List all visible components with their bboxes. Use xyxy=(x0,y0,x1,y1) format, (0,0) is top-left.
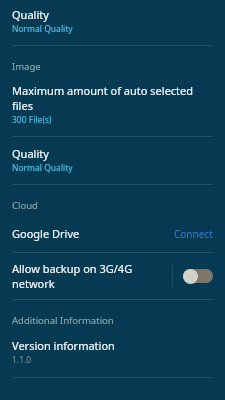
staticText: Google Drive xyxy=(12,226,174,241)
staticText: Normal Quality xyxy=(12,162,73,174)
staticText: Normal Quality xyxy=(12,23,73,35)
button[interactable]: Allow backup on 3G/4G network xyxy=(0,253,225,299)
button[interactable]: Google Drive xyxy=(0,224,225,252)
button[interactable]: Quality xyxy=(0,0,225,45)
staticText: Cloud xyxy=(12,199,225,212)
staticText: Image xyxy=(12,60,225,73)
button[interactable]: Maximum amount of auto selected files xyxy=(0,83,225,136)
staticText: Quality xyxy=(12,146,49,161)
button[interactable]: Version information xyxy=(0,338,225,377)
staticText: Version information xyxy=(12,338,115,353)
staticText: Maximum amount of auto selected files xyxy=(12,83,213,113)
button[interactable]: Allow backup on 3G/4G network toggle xyxy=(183,268,213,284)
staticText: Quality xyxy=(12,7,49,22)
staticText: Connect xyxy=(174,227,213,241)
staticText: Allow backup on 3G/4G network xyxy=(12,261,172,291)
staticText: 1.1.0 xyxy=(12,354,32,366)
staticText: Additional Information xyxy=(12,314,225,327)
staticText: 300 File(s) xyxy=(12,114,52,126)
button[interactable]: Quality xyxy=(0,137,225,184)
